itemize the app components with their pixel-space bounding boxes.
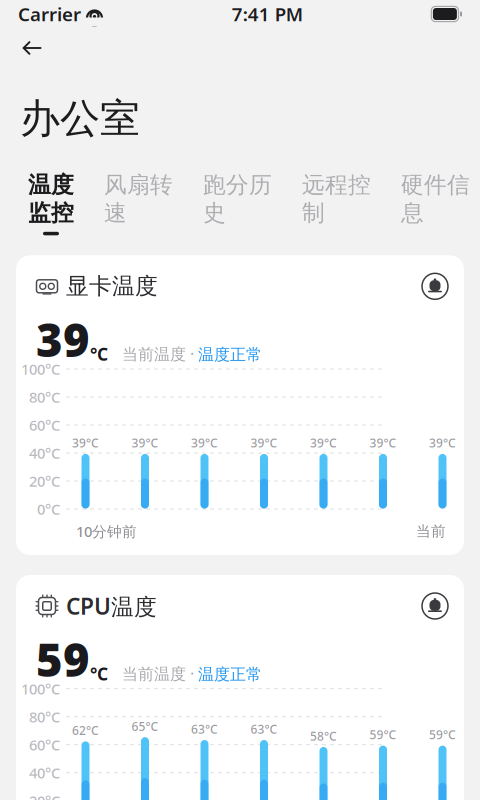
staticText: 20°C	[29, 791, 60, 800]
staticText: 7:41 PM	[232, 2, 303, 26]
button[interactable]: 跑分历史	[195, 169, 280, 237]
staticText: Carrier	[18, 2, 81, 26]
staticText: 80°C	[29, 387, 60, 407]
staticText: 39°C	[310, 435, 337, 451]
button[interactable]: 硬件信息	[393, 169, 478, 237]
staticText: 62°C	[72, 722, 99, 738]
button[interactable]: 温度报警设置	[418, 269, 452, 303]
staticText: 59°C	[429, 727, 456, 743]
staticText: 当前温度 ·	[122, 343, 198, 364]
staticText: 40°C	[29, 763, 60, 782]
button[interactable]: 温度报警设置	[418, 589, 452, 623]
staticText: 63°C	[250, 721, 277, 737]
staticText: 58°C	[310, 728, 337, 744]
staticText: 59°C	[369, 727, 396, 743]
staticText: 当前温度 ·	[122, 663, 198, 684]
button[interactable]: 远程控制	[294, 169, 379, 237]
staticText: 39°C	[369, 435, 396, 451]
staticText: °C	[90, 662, 108, 685]
staticText: 39°C	[191, 435, 218, 451]
staticText: 10分钟前	[76, 521, 137, 541]
button[interactable]: 风扇转速	[96, 169, 181, 237]
staticText: 0°C	[37, 499, 60, 519]
staticText: 办公室	[20, 94, 140, 143]
button[interactable]: 返回	[0, 28, 64, 68]
staticText: 显卡温度	[66, 272, 158, 300]
staticText: 跑分历史	[203, 171, 272, 227]
staticText: 100°C	[21, 359, 60, 379]
staticText: 温度正常	[198, 345, 262, 365]
staticText: 温度监控	[28, 171, 74, 227]
staticText: 温度正常	[198, 664, 262, 684]
staticText: 59	[36, 629, 90, 689]
staticText: 20°C	[29, 471, 60, 491]
staticText: 风扇转速	[104, 171, 173, 227]
staticText: 80°C	[29, 707, 60, 726]
staticText: °C	[90, 342, 108, 365]
button[interactable]: 温度监控	[20, 169, 82, 237]
staticText: 远程控制	[302, 171, 371, 227]
staticText: 39°C	[250, 435, 277, 451]
staticText: 60°C	[29, 415, 60, 435]
staticText: 39°C	[131, 435, 158, 451]
staticText: 60°C	[29, 735, 60, 754]
staticText: CPU温度	[66, 591, 157, 621]
staticText: 39	[36, 309, 90, 369]
staticText: 100°C	[21, 679, 60, 698]
staticText: 63°C	[191, 721, 218, 737]
staticText: 65°C	[131, 718, 158, 734]
staticText: 当前	[416, 522, 446, 540]
staticText: 40°C	[29, 443, 60, 463]
staticText: 39°C	[72, 435, 99, 451]
staticText: 39°C	[429, 435, 456, 451]
staticText: 硬件信息	[401, 171, 470, 227]
